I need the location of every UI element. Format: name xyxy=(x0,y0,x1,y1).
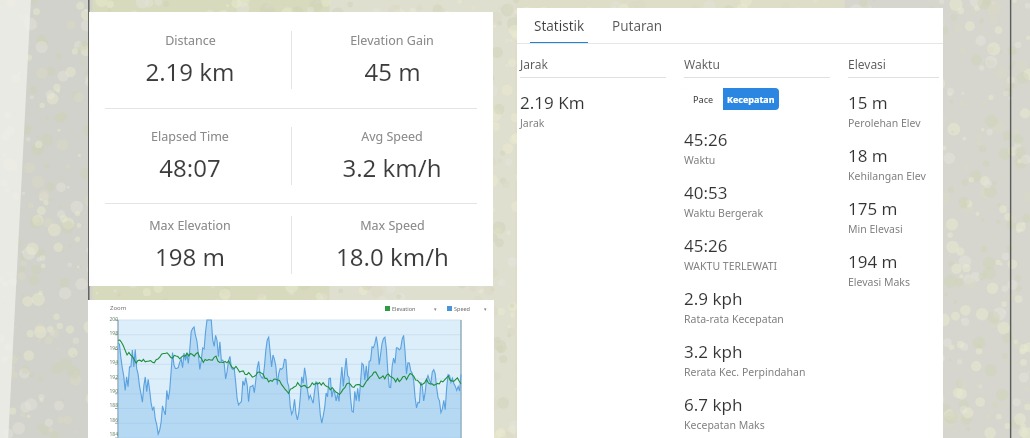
staticText: 2.9 kph xyxy=(684,287,743,310)
staticText: 45 m xyxy=(364,55,421,88)
staticText: 15 m xyxy=(848,91,888,114)
staticText: Distance xyxy=(165,32,216,49)
button[interactable]: Max Speed xyxy=(291,204,493,286)
staticText: 48:07 xyxy=(159,151,221,184)
staticText: 188 xyxy=(109,402,118,409)
button[interactable]: 45:26 xyxy=(684,234,830,273)
staticText: Zoom xyxy=(110,304,127,312)
staticText: 184 xyxy=(109,431,118,438)
staticText: 18.0 km/h xyxy=(336,240,449,273)
staticText: ▾ xyxy=(434,306,437,312)
staticText: 192 xyxy=(109,374,118,381)
staticText: WAKTU TERLEWATI xyxy=(684,259,778,273)
staticText: 186 xyxy=(109,417,118,424)
staticText: Kecepatan xyxy=(727,93,775,105)
button[interactable]: 40:53 xyxy=(684,181,830,220)
button[interactable]: 194 m xyxy=(848,250,939,289)
staticText: Statistik xyxy=(534,17,585,35)
staticText: Waktu xyxy=(684,56,720,72)
staticText: 3.2 kph xyxy=(684,340,743,363)
staticText: 196 xyxy=(109,345,118,352)
staticText: Jarak xyxy=(520,116,545,130)
staticText: Max Speed xyxy=(360,217,425,234)
staticText: Putaran xyxy=(612,17,663,35)
button[interactable]: Speed xyxy=(444,303,490,314)
staticText: Jarak xyxy=(520,56,548,72)
staticText: 198 m xyxy=(155,240,225,273)
button[interactable]: Elevation Gain xyxy=(291,12,493,108)
staticText: Max Elevation xyxy=(149,217,231,234)
button[interactable]: 2.19 Km xyxy=(520,91,666,130)
staticText: 45:26 xyxy=(684,234,728,257)
staticText: 198 xyxy=(109,330,118,337)
button[interactable]: 6.7 kph xyxy=(684,393,830,432)
staticText: Pace xyxy=(693,93,714,105)
staticText: ▾ xyxy=(484,306,487,312)
button[interactable]: Putaran xyxy=(608,8,666,44)
button[interactable]: 2.9 kph xyxy=(684,287,830,326)
staticText: Perolehan Elev xyxy=(848,116,921,130)
button[interactable]: Pace xyxy=(684,88,723,110)
staticText: Elapsed Time xyxy=(151,128,229,145)
staticText: Kehilangan Elev xyxy=(848,169,926,183)
staticText: Elevasi xyxy=(848,56,886,72)
staticText: Kecepatan Maks xyxy=(684,418,765,432)
staticText: 45:26 xyxy=(684,128,728,151)
staticText: 190 xyxy=(109,388,118,395)
staticText: Elevasi Maks xyxy=(848,275,911,289)
button[interactable]: Max Elevation xyxy=(89,204,291,286)
button[interactable]: Kecepatan xyxy=(723,88,779,110)
staticText: Waktu Bergerak xyxy=(684,206,764,220)
staticText: 194 m xyxy=(848,250,898,273)
staticText: 175 m xyxy=(848,197,898,220)
button[interactable]: Elapsed Time xyxy=(89,109,291,203)
button[interactable]: 175 m xyxy=(848,197,939,236)
staticText: 18 m xyxy=(848,144,888,167)
staticText: Rata-rata Kecepatan xyxy=(684,312,784,326)
button[interactable]: Statistik xyxy=(530,8,588,44)
staticText: Elevation Gain xyxy=(350,32,434,49)
button[interactable]: 18 m xyxy=(848,144,939,183)
staticText: 40:53 xyxy=(684,181,728,204)
staticText: Avg Speed xyxy=(361,128,423,145)
button[interactable]: Elevation xyxy=(382,303,440,314)
staticText: 2.19 Km xyxy=(520,91,585,114)
button[interactable]: 3.2 kph xyxy=(684,340,830,379)
staticText: Waktu xyxy=(684,153,716,167)
staticText: Elevation xyxy=(392,305,416,312)
staticText: 200 xyxy=(109,316,118,323)
staticText: Rerata Kec. Perpindahan xyxy=(684,365,806,379)
staticText: Min Elevasi xyxy=(848,222,903,236)
staticText: Speed xyxy=(454,305,470,312)
staticText: 194 xyxy=(109,359,118,366)
button[interactable]: 45:26 xyxy=(684,128,830,167)
button[interactable]: 15 m xyxy=(848,91,939,130)
staticText: 2.19 km xyxy=(145,55,235,88)
staticText: 6.7 kph xyxy=(684,393,743,416)
staticText: 3.2 km/h xyxy=(342,151,442,184)
button[interactable]: Distance xyxy=(89,12,291,108)
button[interactable]: Avg Speed xyxy=(291,109,493,203)
